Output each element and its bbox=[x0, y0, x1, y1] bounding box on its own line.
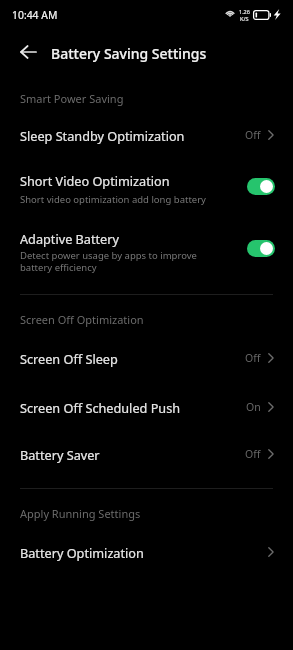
staticText: 10:44 AM bbox=[12, 8, 58, 22]
staticText: Screen Off Optimization bbox=[20, 312, 144, 327]
button[interactable]: Screen Off Sleep bbox=[0, 341, 293, 390]
staticText: Apply Running Settings bbox=[20, 506, 141, 521]
staticText: Sleep Standby Optimization bbox=[20, 127, 185, 144]
staticText: Off bbox=[245, 447, 261, 461]
staticText: Screen Off Scheduled Push bbox=[20, 399, 181, 416]
staticText: Adaptive Battery bbox=[20, 230, 119, 247]
staticText: Short Video Optimization bbox=[20, 172, 170, 189]
staticText: Detect power usage by apps to improve ba… bbox=[20, 249, 231, 274]
staticText: Off bbox=[245, 128, 261, 142]
staticText: Battery Saving Settings bbox=[51, 44, 207, 63]
button[interactable]: Screen Off Scheduled Push bbox=[0, 390, 293, 439]
button[interactable]: Back bbox=[13, 37, 43, 67]
staticText: Screen Off Sleep bbox=[20, 350, 118, 367]
button[interactable]: Toggle on bbox=[247, 178, 275, 195]
staticText: On bbox=[246, 400, 261, 414]
button[interactable]: Toggle on bbox=[247, 240, 275, 257]
button[interactable]: Sleep Standby Optimization bbox=[0, 118, 293, 163]
button[interactable]: Battery Saver bbox=[0, 439, 293, 488]
staticText: Smart Power Saving bbox=[20, 91, 124, 106]
staticText: Battery Optimization bbox=[20, 544, 144, 561]
button[interactable]: Adaptive Battery bbox=[0, 220, 293, 276]
button[interactable]: Short Video Optimization bbox=[0, 163, 293, 213]
staticText: 1.26 bbox=[239, 8, 250, 15]
button[interactable]: Battery Optimization bbox=[0, 535, 293, 584]
staticText: Off bbox=[245, 351, 261, 365]
staticText: K/S bbox=[240, 15, 249, 22]
staticText: Short video optimization add long batter… bbox=[20, 193, 206, 206]
staticText: Battery Saver bbox=[20, 446, 100, 463]
